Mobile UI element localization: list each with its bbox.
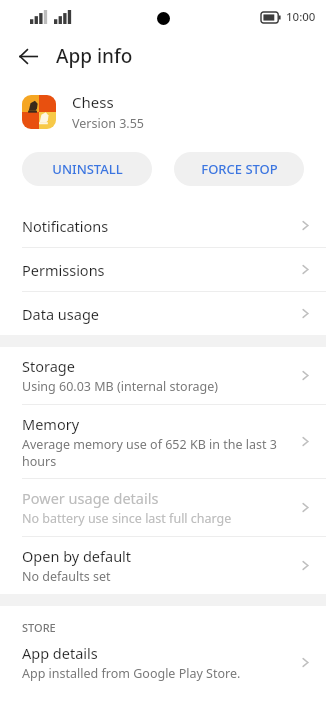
button[interactable]: Power usage details	[0, 479, 326, 537]
staticText: Using 60.03 MB (internal storage)	[22, 378, 219, 395]
staticText: Average memory use of 652 KB in the last…	[22, 436, 289, 469]
button[interactable]: App details	[0, 639, 326, 691]
staticText: Memory	[22, 414, 80, 434]
button[interactable]: FORCE STOP	[174, 152, 304, 186]
staticText: Data usage	[22, 304, 299, 324]
staticText: FORCE STOP	[201, 160, 278, 178]
staticText: STORE	[22, 620, 56, 635]
button[interactable]: Notifications	[0, 204, 326, 248]
staticText: Chess	[72, 92, 114, 112]
button[interactable]: Memory	[0, 405, 326, 479]
button[interactable]: Data usage	[0, 292, 326, 335]
button[interactable]: Open by default	[0, 537, 326, 594]
staticText: Open by default	[22, 546, 132, 566]
staticText: Notifications	[22, 216, 299, 236]
staticText: Version 3.55	[72, 115, 145, 132]
staticText: UNINSTALL	[52, 160, 123, 178]
staticText: No defaults set	[22, 568, 111, 585]
staticText: Storage	[22, 356, 75, 376]
staticText: App details	[22, 643, 98, 663]
button[interactable]: UNINSTALL	[22, 152, 152, 186]
staticText: Power usage details	[22, 488, 159, 508]
staticText: App info	[56, 43, 133, 69]
staticText: App installed from Google Play Store.	[22, 665, 241, 682]
button[interactable]: Back	[10, 38, 46, 74]
button[interactable]: Permissions	[0, 248, 326, 292]
staticText: Permissions	[22, 260, 299, 280]
button[interactable]: Storage	[0, 347, 326, 405]
staticText: 10:00	[286, 9, 316, 25]
staticText: No battery use since last full charge	[22, 510, 232, 527]
